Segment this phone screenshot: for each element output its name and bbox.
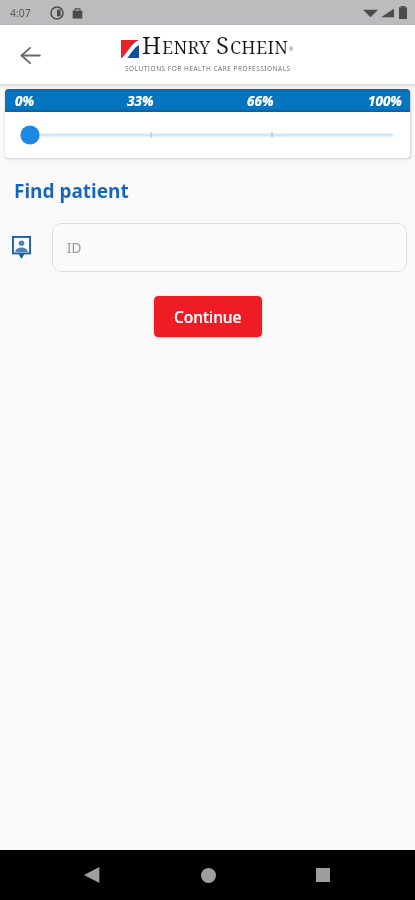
button[interactable]: Recents bbox=[299, 851, 347, 899]
staticText: 0% bbox=[15, 92, 34, 110]
staticText: SOLUTIONS FOR HEALTH CARE PROFESSIONALS bbox=[125, 64, 291, 73]
button[interactable]: Continue bbox=[154, 296, 262, 337]
button[interactable]: ID bbox=[52, 223, 407, 272]
staticText: 4:07 bbox=[10, 6, 31, 20]
staticText: ENRY bbox=[162, 35, 211, 60]
staticText: Find patient bbox=[14, 178, 129, 204]
staticText: ID bbox=[67, 239, 82, 257]
button[interactable]: Back bbox=[68, 851, 116, 899]
button[interactable]: Home bbox=[184, 851, 232, 899]
staticText: ® bbox=[289, 46, 294, 53]
staticText: 100% bbox=[368, 92, 402, 110]
staticText: Continue bbox=[174, 306, 242, 327]
button[interactable]: Back bbox=[8, 33, 52, 77]
staticText: CHEIN bbox=[230, 35, 289, 60]
staticText: 66% bbox=[247, 92, 274, 110]
staticText: H bbox=[142, 28, 162, 61]
staticText: S bbox=[216, 28, 230, 61]
staticText: 33% bbox=[127, 92, 154, 110]
